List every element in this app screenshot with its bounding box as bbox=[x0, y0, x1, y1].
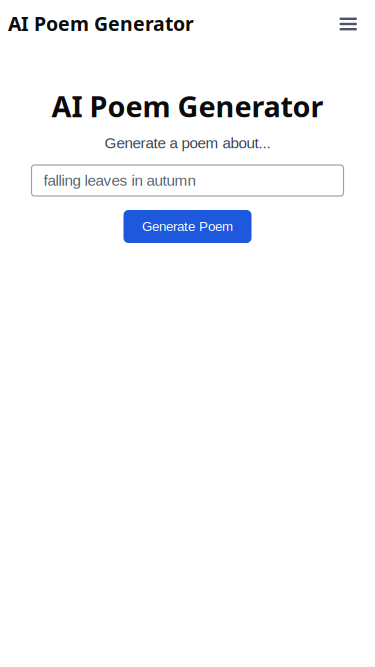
staticText: falling leaves in autumn bbox=[43, 172, 195, 189]
staticText: AI Poem Generator bbox=[8, 10, 194, 37]
staticText: Generate a poem about... bbox=[104, 134, 270, 151]
staticText: AI Poem Generator bbox=[51, 86, 323, 126]
button[interactable]: Generate Poem bbox=[123, 210, 251, 243]
staticText: Generate Poem bbox=[142, 219, 233, 234]
button[interactable]: falling leaves in autumn bbox=[31, 165, 343, 196]
button[interactable]: Menu bbox=[327, 0, 363, 47]
